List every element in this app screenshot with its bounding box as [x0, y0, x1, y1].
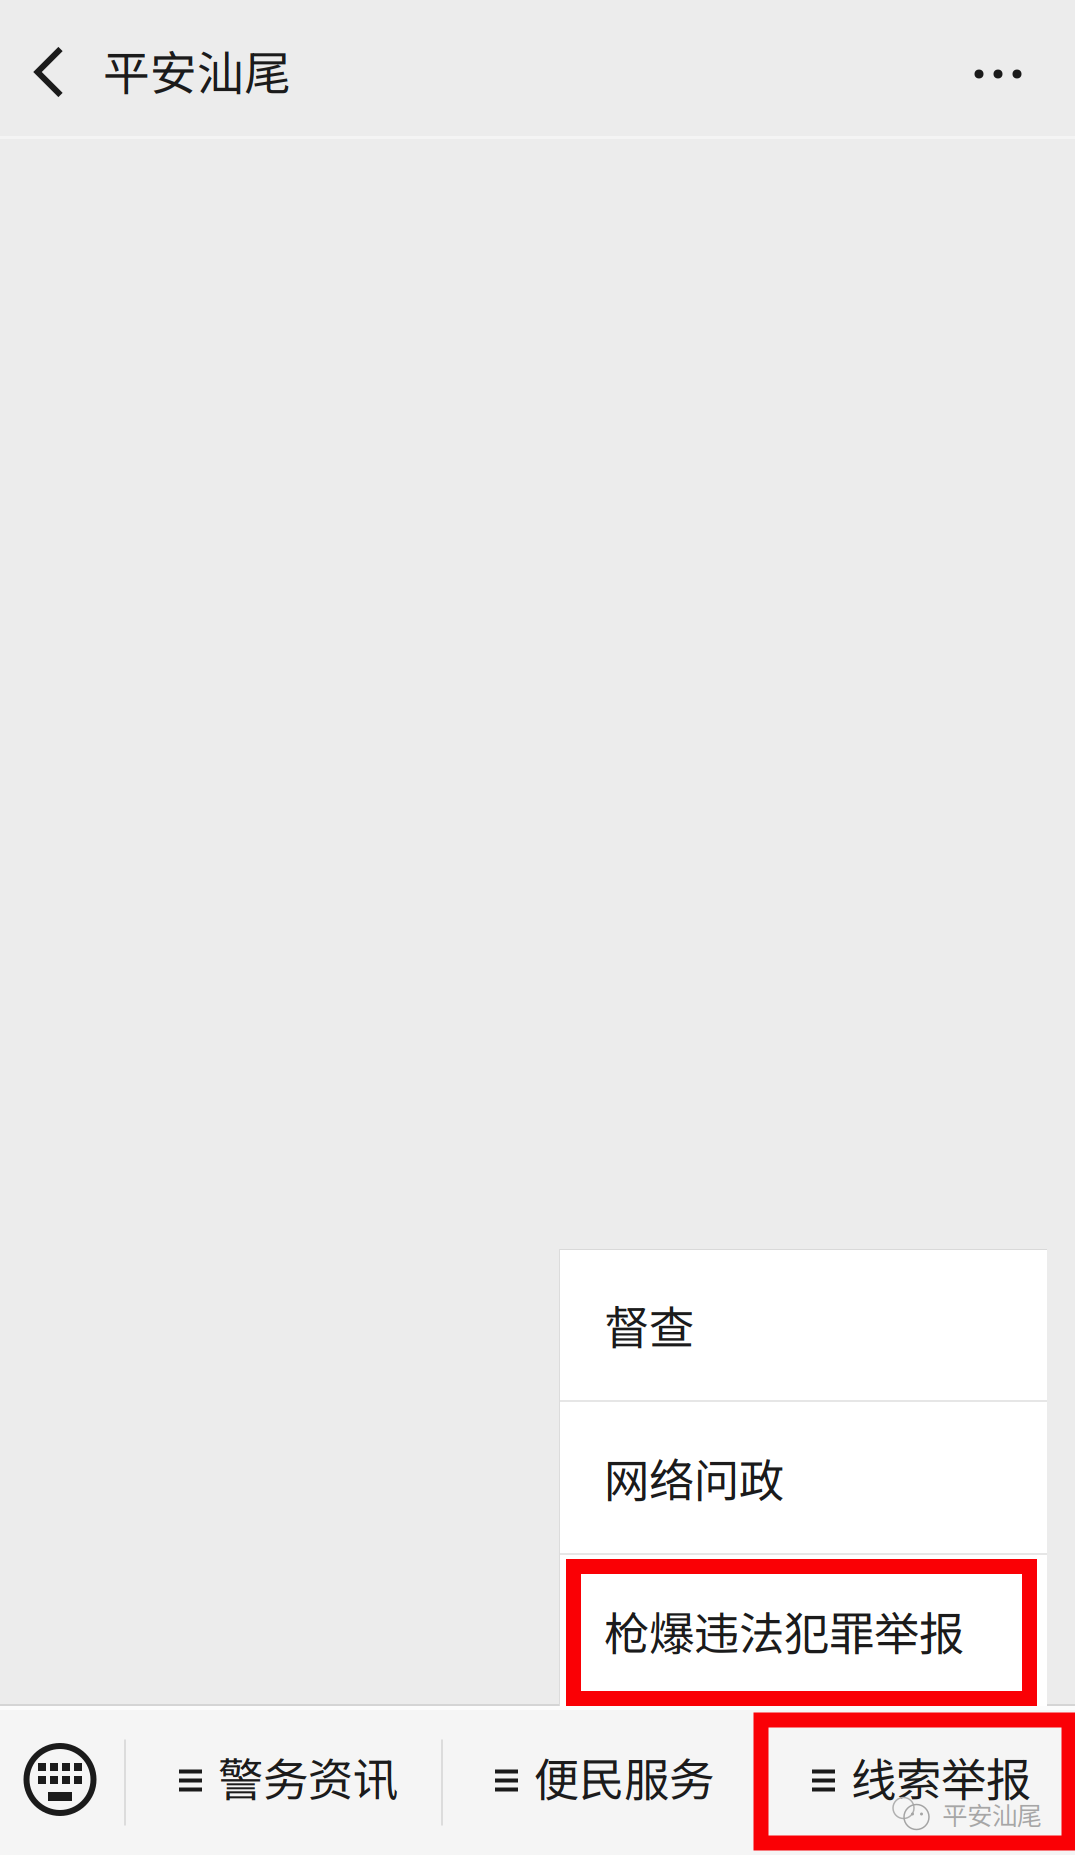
button[interactable]: 网络问政	[559, 1402, 1047, 1553]
button[interactable]: More options	[953, 0, 1075, 136]
button[interactable]: Back	[0, 0, 98, 136]
staticText: 网络问政	[604, 1445, 784, 1510]
staticText: 平安汕尾	[103, 36, 291, 104]
button[interactable]: 督查	[559, 1249, 1047, 1400]
button[interactable]: Keyboard	[0, 1710, 124, 1855]
staticText: 枪爆违法犯罪举报	[604, 1598, 964, 1663]
staticText: 线索举报	[851, 1744, 1031, 1809]
button[interactable]: 线索举报	[760, 1710, 1075, 1855]
button[interactable]: 便民服务	[443, 1710, 758, 1855]
button[interactable]: 警务资讯	[126, 1710, 441, 1855]
staticText: 便民服务	[534, 1744, 714, 1809]
staticText: 警务资讯	[218, 1744, 398, 1809]
staticText: 督查	[604, 1292, 694, 1357]
button[interactable]: 枪爆违法犯罪举报	[559, 1555, 1047, 1706]
staticText: 平安汕尾	[942, 1796, 1042, 1832]
